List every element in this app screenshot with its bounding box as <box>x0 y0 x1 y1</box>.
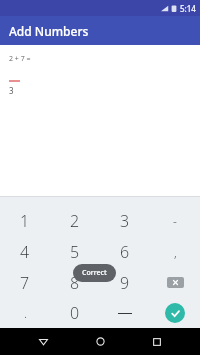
button[interactable]: Home <box>86 328 114 355</box>
button[interactable]: Recent apps <box>143 328 171 355</box>
button[interactable]: . <box>0 298 50 328</box>
button[interactable]: 2 <box>50 205 100 236</box>
staticText: , <box>174 244 177 260</box>
button[interactable]: 4 <box>0 236 50 267</box>
button[interactable]: 5 <box>50 236 100 267</box>
staticText: . <box>24 305 27 321</box>
button[interactable]: 3 <box>100 205 150 236</box>
staticText: 5 <box>70 241 80 263</box>
staticText: 2 <box>70 210 80 232</box>
button[interactable]: Back <box>29 328 57 355</box>
button[interactable]: - <box>150 205 200 236</box>
staticText: 5:14 <box>180 3 196 14</box>
staticText: Add Numbers <box>9 23 89 39</box>
button[interactable]: 7 <box>0 267 50 298</box>
button[interactable]: 9 <box>100 267 150 298</box>
staticText: 6 <box>120 241 130 263</box>
button[interactable]: Submit answer <box>150 298 200 328</box>
button[interactable]: 1 <box>0 205 50 236</box>
staticText: Correct <box>82 268 107 278</box>
button[interactable]: 8 <box>50 267 100 298</box>
staticText: 8 <box>70 272 80 294</box>
staticText: 3 <box>9 85 14 96</box>
staticText: - <box>173 213 177 229</box>
button[interactable]: , <box>150 236 200 267</box>
staticText: 2 + 7 = <box>9 54 31 64</box>
button[interactable]: Correct <box>73 264 116 282</box>
button[interactable]: Backspace <box>150 267 200 298</box>
button[interactable]: 6 <box>100 236 150 267</box>
staticText: 4 <box>20 241 30 263</box>
staticText: 1 <box>20 210 30 232</box>
staticText: 9 <box>120 272 130 294</box>
button[interactable]: 0 <box>50 298 100 328</box>
button[interactable]: Space <box>100 298 150 328</box>
staticText: 3 <box>120 210 130 232</box>
staticText: 0 <box>70 302 80 324</box>
staticText: 7 <box>20 272 30 294</box>
